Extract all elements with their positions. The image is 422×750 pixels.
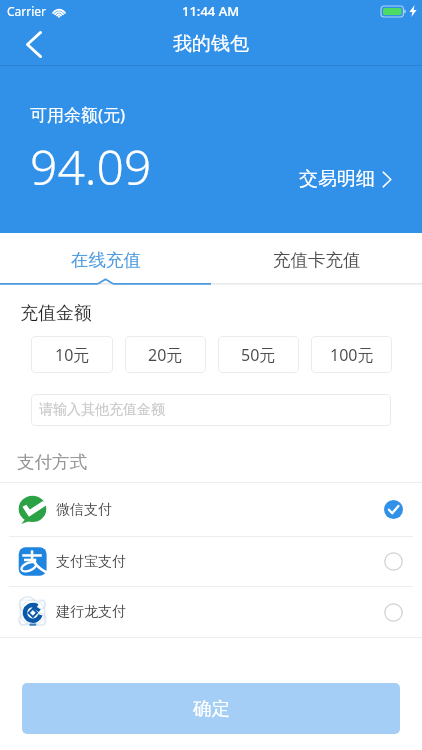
staticText: 充值卡充值 xyxy=(273,249,361,271)
staticText: 充值金额 xyxy=(20,302,92,325)
staticText: 100元 xyxy=(330,344,374,366)
button[interactable]: 建行龙支付 xyxy=(0,587,422,637)
staticText: 确定 xyxy=(193,697,230,720)
button[interactable]: 交易明细 xyxy=(299,167,422,191)
staticText: 10元 xyxy=(55,344,90,366)
staticText: 支付方式 xyxy=(17,451,87,473)
button[interactable]: 请输入其他充值金额 xyxy=(31,394,391,426)
staticText: 11:44 AM xyxy=(182,2,240,20)
staticText: 交易明细 xyxy=(299,167,375,191)
staticText: 50元 xyxy=(241,344,276,366)
button[interactable]: 确定 xyxy=(22,683,400,734)
staticText: 可用余额(元) xyxy=(30,103,126,126)
staticText: 建行龙支付 xyxy=(56,603,126,621)
button[interactable]: Back xyxy=(0,22,68,66)
staticText: 在线充值 xyxy=(71,249,141,271)
staticText: 请输入其他充值金额 xyxy=(39,401,165,419)
button[interactable]: 在线充值 xyxy=(0,233,211,285)
button[interactable]: 10元 xyxy=(31,336,113,373)
staticText: 我的钱包 xyxy=(173,32,249,56)
button[interactable]: 支付宝支付 xyxy=(0,537,422,586)
staticText: 微信支付 xyxy=(56,501,112,519)
button[interactable]: 微信支付 xyxy=(0,483,422,536)
staticText: 94.09 xyxy=(30,134,152,199)
button[interactable]: 100元 xyxy=(311,336,392,373)
staticText: Carrier xyxy=(7,3,47,19)
staticText: 20元 xyxy=(148,344,183,366)
button[interactable]: 充值卡充值 xyxy=(211,233,422,285)
button[interactable]: 20元 xyxy=(125,336,206,373)
button[interactable]: 50元 xyxy=(218,336,299,373)
staticText: 支付宝支付 xyxy=(56,553,126,571)
